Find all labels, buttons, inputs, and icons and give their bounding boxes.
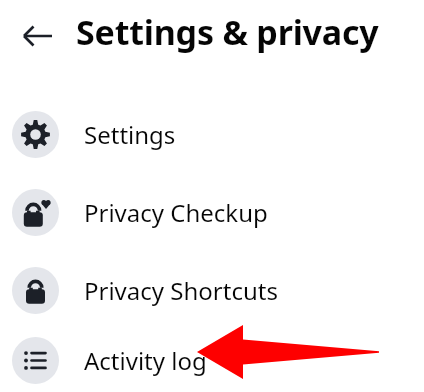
button[interactable]: Back bbox=[15, 12, 63, 60]
staticText: Privacy Shortcuts bbox=[84, 274, 278, 307]
button[interactable]: Privacy Checkup bbox=[0, 173, 424, 251]
staticText: Settings bbox=[84, 118, 176, 151]
button[interactable]: Privacy Shortcuts bbox=[0, 251, 424, 329]
staticText: Activity log bbox=[84, 344, 207, 377]
button[interactable]: Settings bbox=[0, 95, 424, 173]
staticText: Settings & privacy bbox=[76, 9, 379, 55]
staticText: Privacy Checkup bbox=[84, 196, 268, 229]
button[interactable]: Activity log bbox=[0, 329, 424, 392]
